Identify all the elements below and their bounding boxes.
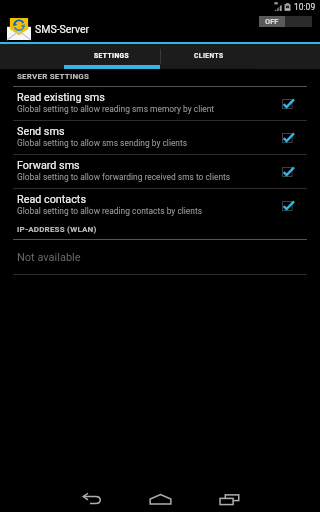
button[interactable]: Forward sms bbox=[0, 155, 320, 188]
staticText: 10:09 bbox=[294, 2, 316, 12]
staticText: Read existing sms bbox=[17, 91, 105, 104]
staticText: IP-ADDRESS (WLAN) bbox=[17, 225, 97, 234]
button[interactable]: Read existing sms bbox=[0, 87, 320, 120]
staticText: Not available bbox=[17, 251, 81, 264]
button[interactable]: Server on or off bbox=[259, 16, 312, 27]
staticText: SERVER SETTINGS bbox=[17, 72, 90, 81]
staticText: SETTINGS bbox=[94, 52, 130, 60]
staticText: CLIENTS bbox=[194, 52, 224, 60]
staticText: Read contacts bbox=[17, 193, 86, 206]
staticText: Forward sms bbox=[17, 159, 80, 172]
staticText: Global setting to allow forwarding recei… bbox=[17, 172, 231, 182]
button[interactable]: Back bbox=[57, 476, 126, 512]
button[interactable]: Read contacts bbox=[0, 189, 320, 222]
staticText: OFF bbox=[265, 17, 279, 26]
button[interactable]: Not available bbox=[0, 240, 320, 274]
button[interactable]: Recent apps bbox=[195, 476, 264, 512]
staticText: Global setting to allow reading contacts… bbox=[17, 206, 203, 216]
staticText: Global setting to allow sms sending by c… bbox=[17, 138, 188, 148]
staticText: SMS-Server bbox=[35, 23, 90, 35]
button[interactable]: SETTINGS bbox=[64, 44, 160, 69]
staticText: Global setting to allow reading sms memo… bbox=[17, 104, 215, 114]
staticText: Send sms bbox=[17, 125, 65, 138]
button[interactable]: Send sms bbox=[0, 121, 320, 154]
button[interactable]: CLIENTS bbox=[161, 44, 256, 69]
button[interactable]: Home bbox=[126, 476, 195, 512]
